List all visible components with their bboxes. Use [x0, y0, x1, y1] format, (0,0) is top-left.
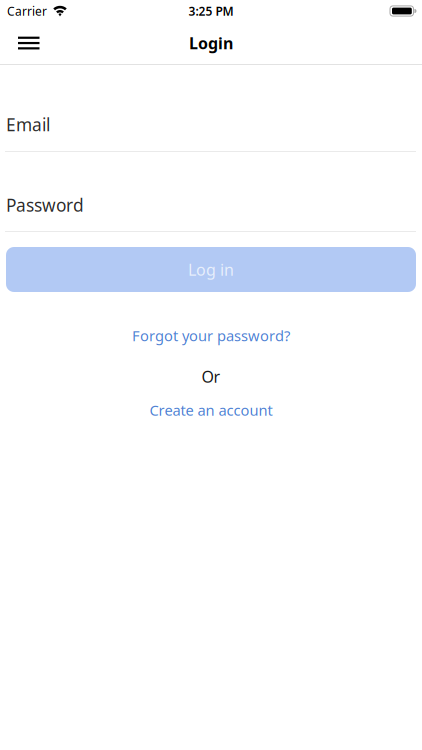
staticText: Login: [189, 32, 233, 54]
button[interactable]: Log in: [6, 247, 416, 292]
staticText: Or: [201, 366, 220, 387]
staticText: 3:25 PM: [188, 3, 233, 19]
staticText: Forgot your password?: [132, 326, 290, 345]
button[interactable]: Menu: [0, 26, 50, 60]
staticText: Email: [6, 113, 50, 136]
staticText: Create an account: [149, 400, 272, 420]
staticText: Carrier: [7, 3, 47, 19]
staticText: Password: [6, 193, 84, 216]
staticText: Log in: [188, 259, 234, 280]
button[interactable]: Forgot your password?: [132, 326, 290, 345]
button[interactable]: Create an account: [149, 400, 272, 420]
